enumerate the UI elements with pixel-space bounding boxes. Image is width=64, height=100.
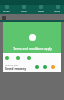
staticText: Send money	[5, 66, 27, 71]
staticText: Chats	[3, 9, 10, 12]
button[interactable]: App	[27, 56, 31, 60]
button[interactable]: More	[51, 5, 64, 12]
button[interactable]: App	[16, 56, 20, 60]
staticText: Scan & Pay	[5, 63, 18, 66]
button[interactable]: App	[43, 65, 47, 69]
staticText: Terms and conditions apply	[13, 47, 52, 51]
staticText: Calls	[21, 9, 27, 12]
button[interactable]: Bank	[34, 5, 47, 12]
staticText: More	[54, 9, 61, 12]
button[interactable]: Chats	[0, 5, 13, 12]
button[interactable]: App	[51, 65, 55, 69]
button[interactable]: App	[35, 65, 39, 69]
button[interactable]: App	[5, 56, 9, 60]
button[interactable]: Calls	[17, 5, 30, 12]
staticText: Bank	[38, 9, 44, 12]
